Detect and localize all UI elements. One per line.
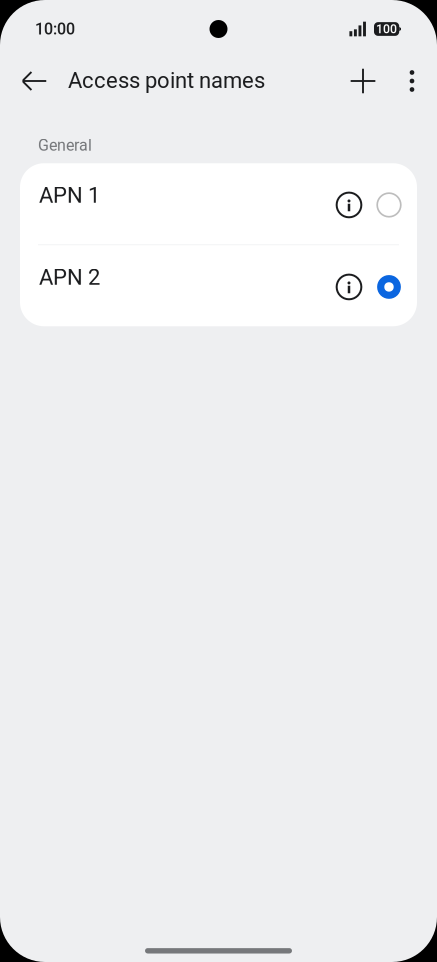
button[interactable]: APN 2 (20, 245, 417, 326)
staticText: Access point names (68, 68, 265, 93)
button[interactable]: APN 1 (20, 163, 417, 244)
staticText: General (38, 136, 92, 155)
button[interactable]: APN 2 details (329, 246, 369, 327)
button[interactable]: Add APN (339, 57, 387, 105)
button[interactable]: Select APN 2 (369, 246, 409, 327)
button[interactable]: Back (10, 57, 58, 105)
staticText: APN 2 (39, 264, 100, 290)
button[interactable]: Select APN 1 (369, 164, 409, 245)
button[interactable]: More options (387, 57, 437, 105)
staticText: 100 (376, 22, 397, 36)
staticText: APN 1 (39, 182, 100, 208)
button[interactable]: APN 1 details (329, 164, 369, 245)
staticText: 10:00 (35, 20, 75, 38)
